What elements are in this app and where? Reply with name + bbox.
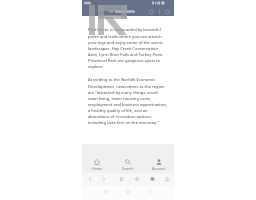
staticText: Search (122, 166, 134, 171)
button[interactable]: Account (143, 144, 174, 173)
staticText: Account (152, 166, 166, 171)
button[interactable]: Home (82, 144, 112, 173)
staticText: Home (92, 166, 103, 171)
button[interactable]: Search (112, 144, 143, 173)
staticText: According to the Norfolk Economic Develo… (88, 77, 168, 125)
staticText: Port Dover is surrounded by beautiful pa… (88, 27, 168, 69)
